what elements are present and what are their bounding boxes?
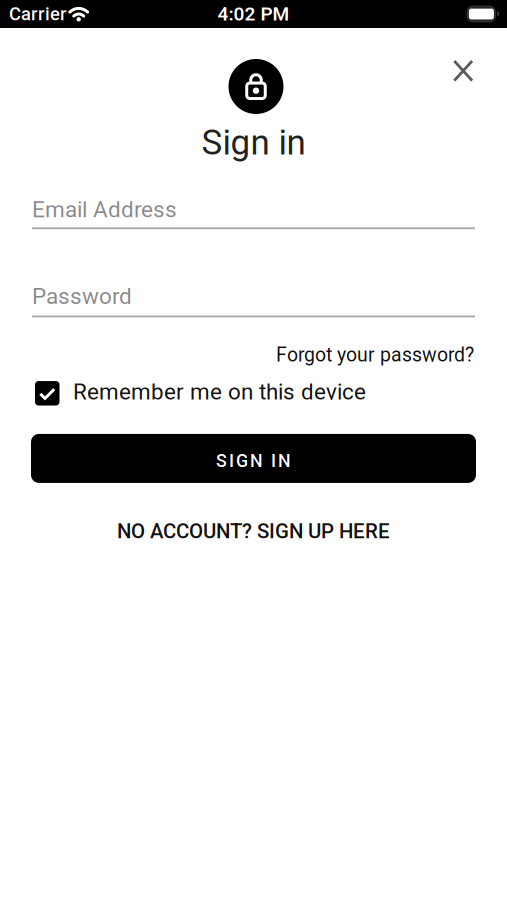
button[interactable]: Remember me on this device bbox=[0, 379, 507, 405]
staticText: NO ACCOUNT? SIGN UP HERE bbox=[117, 519, 390, 543]
staticText: Sign in bbox=[201, 122, 305, 163]
staticText: Remember me on this device bbox=[73, 379, 366, 405]
staticText: 4:02 PM bbox=[217, 3, 289, 25]
staticText: Carrier bbox=[9, 3, 67, 25]
staticText: Password bbox=[32, 283, 132, 309]
staticText: Email Address bbox=[32, 196, 177, 223]
staticText: S I G N I N bbox=[216, 450, 291, 471]
button[interactable]: S I G N I N bbox=[31, 434, 476, 483]
button[interactable]: Close bbox=[453, 60, 473, 82]
button[interactable]: Forgot your password? bbox=[276, 343, 474, 366]
staticText: Forgot your password? bbox=[276, 343, 474, 366]
button[interactable]: NO ACCOUNT? SIGN UP HERE bbox=[117, 519, 390, 543]
